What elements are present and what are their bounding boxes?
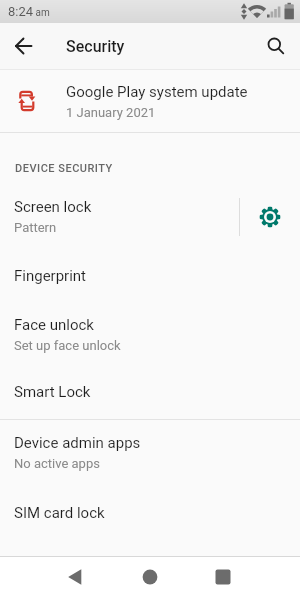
button[interactable] [240,185,300,248]
staticText: DEVICE SECURITY [15,162,113,175]
button[interactable]: Face unlock [0,304,300,364]
button[interactable]: Google Play system update [0,70,300,132]
button[interactable]: SIM card lock [0,485,300,541]
button[interactable] [0,23,48,69]
staticText: SIM card lock [14,504,105,522]
staticText: Smart Lock [14,383,91,401]
button[interactable] [209,563,237,591]
staticText: Security [66,37,125,56]
staticText: Screen lock [14,198,92,216]
staticText: Set up face unlock [14,338,121,353]
staticText: 8:24 am [8,4,50,19]
button[interactable]: Smart Lock [0,364,300,419]
button[interactable] [252,23,300,69]
button[interactable]: Fingerprint [0,248,300,304]
button[interactable]: Screen lock [0,185,239,248]
button[interactable] [136,563,164,591]
button[interactable]: Device admin apps [0,420,300,485]
staticText: No active apps [14,456,100,471]
staticText: Face unlock [14,316,94,334]
staticText: Google Play system update [66,83,248,101]
button[interactable] [61,563,89,591]
staticText: Fingerprint [14,267,87,285]
staticText: Pattern [14,220,57,235]
staticText: Device admin apps [14,434,141,452]
staticText: 1 January 2021 [66,105,156,120]
